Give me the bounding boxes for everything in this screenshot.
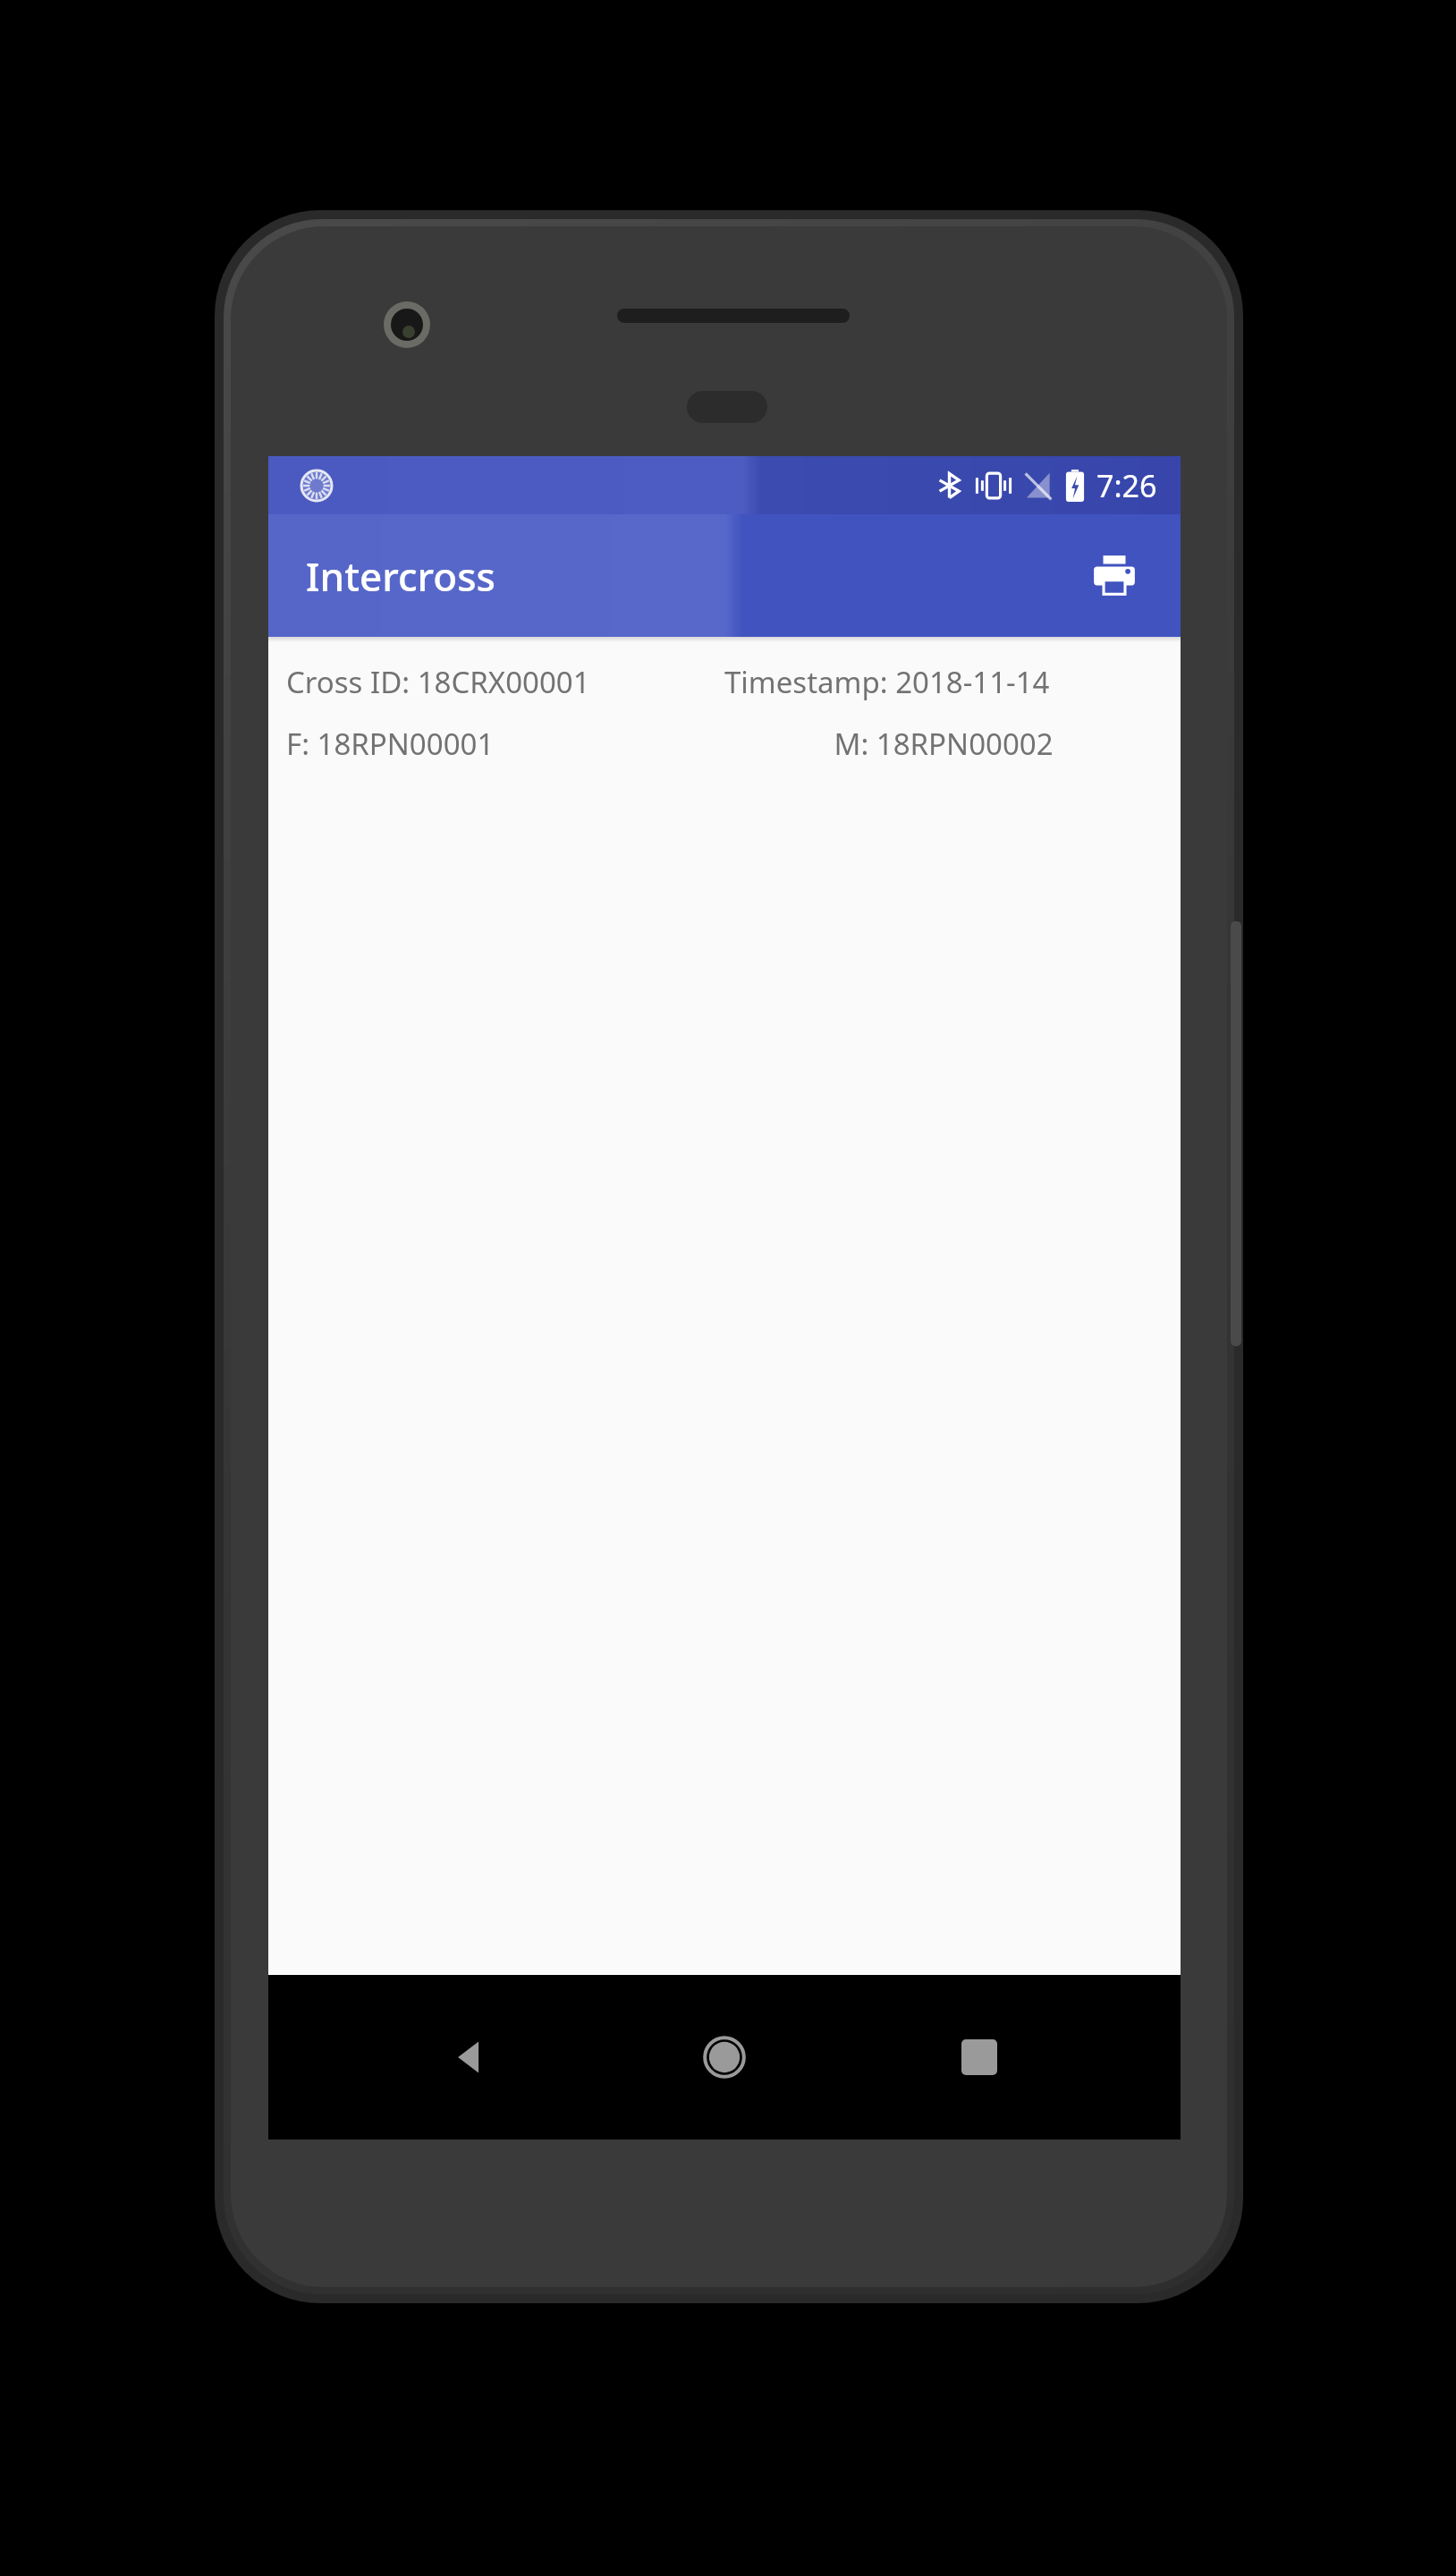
button[interactable]: Back: [416, 2004, 523, 2111]
button[interactable]: Cross ID: 18CRX00001: [268, 642, 1181, 778]
staticText: F: 18RPN00001: [286, 724, 724, 764]
staticText: 7:26: [1096, 465, 1157, 506]
staticText: Cross ID: 18CRX00001: [286, 662, 724, 702]
button[interactable]: Recent apps: [926, 2004, 1033, 2111]
staticText: Intercross: [306, 549, 495, 603]
button[interactable]: Print: [1075, 537, 1154, 615]
staticText: Timestamp: 2018-11-14: [724, 662, 1163, 702]
button[interactable]: Home: [671, 2004, 778, 2111]
staticText: M: 18RPN00002: [724, 724, 1163, 764]
